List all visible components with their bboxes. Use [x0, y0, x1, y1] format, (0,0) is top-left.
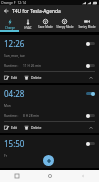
- staticText: Edit: [11, 75, 18, 80]
- staticText: 11 H 26 min: [23, 64, 41, 68]
- staticText: Sleepy Mode: [56, 25, 74, 29]
- button[interactable]: Edit: [4, 125, 18, 130]
- staticText: Mon: [4, 104, 11, 108]
- button[interactable]: Delete: [24, 75, 42, 80]
- staticText: 8 H 28 min: [23, 114, 40, 118]
- staticText: Orange F 12:14: [1, 0, 27, 5]
- button[interactable]: Charge: [0, 17, 19, 32]
- staticText: HVAC: [24, 26, 32, 30]
- button[interactable]: Sentry Mode: [75, 17, 99, 32]
- button[interactable]: Add alarm: [43, 155, 54, 166]
- button[interactable]: HVAC: [19, 17, 36, 32]
- staticText: Sun, mon, tue: [4, 54, 25, 58]
- button[interactable]: Collapse: [87, 124, 95, 132]
- button[interactable]: Collapse: [87, 74, 95, 82]
- staticText: Delete: [31, 75, 42, 80]
- staticText: Charge: [5, 26, 15, 30]
- staticText: Sentry Mode: [78, 25, 96, 29]
- button[interactable]: Back: [0, 5, 12, 17]
- staticText: Save Mode: [38, 25, 53, 29]
- button[interactable]: Delete: [24, 125, 42, 130]
- staticText: 04:28: [4, 88, 25, 99]
- staticText: Edit: [11, 125, 18, 130]
- button[interactable]: Home: [33, 170, 66, 182]
- button[interactable]: Toggle: [86, 112, 95, 119]
- button[interactable]: Save Mode: [36, 17, 54, 32]
- button[interactable]: Edit: [4, 75, 18, 80]
- staticText: 15:50: [4, 138, 25, 149]
- staticText: Delete: [31, 125, 42, 130]
- staticText: Runtime :: [4, 114, 19, 118]
- staticText: Runtime :: [4, 64, 19, 68]
- button[interactable]: Toggle: [86, 90, 95, 97]
- button[interactable]: Recents: [0, 170, 33, 182]
- button[interactable]: Toggle: [86, 62, 95, 69]
- button[interactable]: Toggle: [86, 140, 95, 147]
- staticText: Fr: [4, 154, 7, 158]
- staticText: 12:26: [4, 38, 25, 49]
- button[interactable]: Sleepy Mode: [54, 17, 75, 32]
- staticText: T4U for Tesla-Agenda: [12, 8, 61, 15]
- button[interactable]: Toggle: [86, 40, 95, 47]
